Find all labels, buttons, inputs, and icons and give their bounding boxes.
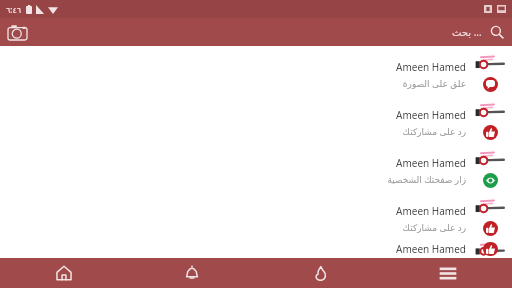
button[interactable]: Ameen Hamed xyxy=(0,242,512,258)
button[interactable]: Notifications xyxy=(128,258,256,288)
staticText: Ameen Hamed xyxy=(396,60,466,74)
staticText: Ameen Hamed xyxy=(396,108,466,122)
button[interactable]: Ameen Hamed xyxy=(0,194,512,242)
staticText: ٦:٤٦ xyxy=(6,4,22,15)
button[interactable]: Ameen Hamed xyxy=(0,50,512,98)
staticText: رد على مشاركتك xyxy=(402,125,466,137)
button[interactable]: Ameen Hamed xyxy=(0,98,512,146)
staticText: علق على الصورة xyxy=(402,77,466,89)
staticText: بحث ... xyxy=(452,25,482,39)
button[interactable]: Home xyxy=(0,258,128,288)
staticText: Ameen Hamed xyxy=(396,156,466,170)
button[interactable]: Camera xyxy=(4,19,30,45)
staticText: رد على مشاركتك xyxy=(402,221,466,233)
button[interactable]: Trending xyxy=(256,258,384,288)
staticText: زار صفحتك الشخصية xyxy=(387,173,466,185)
staticText: Ameen Hamed xyxy=(396,242,466,256)
staticText: Ameen Hamed xyxy=(396,204,466,218)
button[interactable]: Menu xyxy=(384,258,512,288)
button[interactable]: Ameen Hamed xyxy=(0,146,512,194)
button[interactable]: بحث ... xyxy=(452,25,504,39)
